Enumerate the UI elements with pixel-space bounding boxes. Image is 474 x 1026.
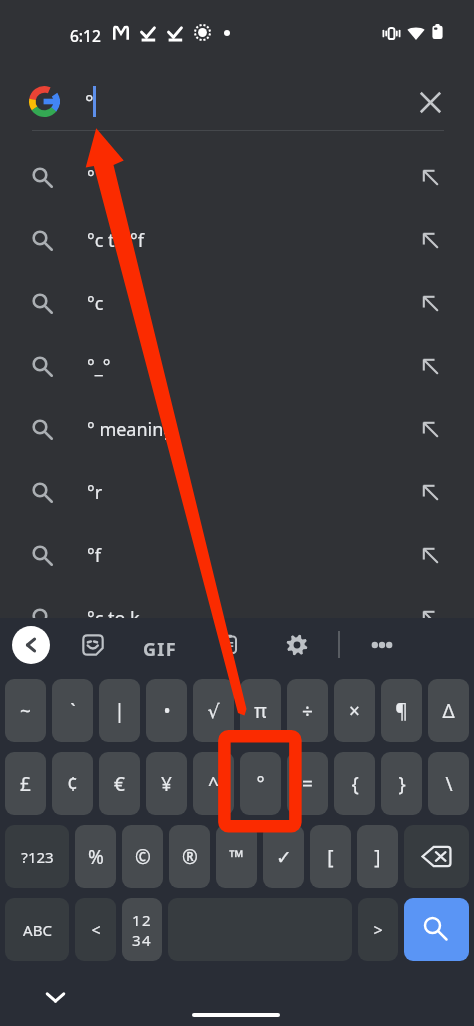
staticText: ° meaning [87,417,175,442]
staticText: ABC [23,920,52,940]
button[interactable]: More options [366,629,398,661]
button[interactable]: √ [193,679,234,742]
button[interactable]: GIF [140,629,180,669]
staticText: | [114,698,125,724]
staticText: ?123 [21,847,54,867]
button[interactable]: ] [357,825,398,888]
staticText: € [114,771,125,797]
staticText: °c [87,291,104,316]
staticText: ® [182,844,198,870]
staticText: ~ [20,698,31,724]
staticText: % [88,844,104,870]
button[interactable]: Search [404,898,469,961]
staticText: π [254,698,267,724]
staticText: × [349,698,360,724]
button[interactable]: % [75,825,116,888]
staticText: ] [374,844,381,870]
button[interactable]: °c to k [0,587,474,650]
button[interactable]: Stickers [77,629,109,661]
button[interactable]: °r [0,461,474,524]
button[interactable]: Clipboard [214,629,245,660]
button[interactable]: £ [5,752,46,815]
button[interactable]: ABC [5,898,69,961]
staticText: 12 [132,910,153,930]
staticText: °c to °f [87,228,144,253]
button[interactable]: \ [428,752,469,815]
button[interactable]: ¢ [52,752,93,815]
button[interactable]: € [99,752,140,815]
button[interactable]: °f [0,524,474,587]
button[interactable]: ÷ [287,679,328,742]
staticText: [ [327,844,334,870]
button[interactable]: • [146,679,187,742]
button[interactable]: ¥ [146,752,187,815]
staticText: \ [445,771,453,797]
button[interactable]: } [381,752,422,815]
button[interactable]: < [75,898,116,961]
button[interactable]: ¶ [381,679,422,742]
staticText: } [398,771,406,797]
button[interactable]: °c [0,272,474,335]
button[interactable]: ?123 [5,825,69,888]
staticText: < [91,919,101,941]
staticText: Δ [442,698,455,724]
button[interactable]: ` [52,679,93,742]
button[interactable]: = [287,752,328,815]
staticText: > [373,919,383,941]
button[interactable]: Back [12,626,50,664]
staticText: © [135,844,151,870]
button[interactable]: °c to °f [0,209,474,272]
staticText: ™ [229,844,244,870]
staticText: ✓ [276,846,292,868]
button[interactable]: × [334,679,375,742]
staticText: ° [256,771,265,797]
button[interactable]: > [358,898,398,961]
staticText: °c to k [87,606,140,631]
staticText: °_° [87,354,111,379]
staticText: = [302,771,313,797]
staticText: • [163,698,171,724]
staticText: £ [20,771,31,797]
button[interactable]: °_° [0,335,474,398]
button[interactable]: ✓ [263,825,304,888]
staticText: ° [85,89,94,116]
staticText: °f [87,543,101,568]
button[interactable]: Δ [428,679,469,742]
button[interactable]: ™ [216,825,257,888]
staticText: ` [70,698,76,724]
button[interactable]: Numbers [122,898,162,961]
button[interactable]: © [122,825,163,888]
button[interactable]: { [334,752,375,815]
staticText: ÷ [302,698,313,724]
button[interactable]: ~ [5,679,46,742]
staticText: ¥ [161,771,172,797]
staticText: 34 [132,930,153,950]
button[interactable]: ° [0,146,474,209]
button[interactable]: π [240,679,281,742]
button[interactable]: ® [169,825,210,888]
staticText: ° [87,165,95,190]
button[interactable]: Hide keyboard [44,986,67,1009]
button[interactable]: [ [310,825,351,888]
button[interactable]: ° [240,752,281,815]
staticText: ^ [208,771,219,797]
staticText: √ [207,700,220,722]
staticText: ¶ [395,698,408,724]
button[interactable]: ^ [193,752,234,815]
staticText: 6:12 [70,25,101,46]
button[interactable]: Delete [404,825,469,888]
staticText: ¢ [67,771,78,797]
staticText: { [351,771,359,797]
button[interactable]: ° meaning [0,398,474,461]
button[interactable]: Clear search [418,90,443,115]
button[interactable]: Settings [281,629,313,661]
staticText: GIF [143,637,177,662]
button[interactable]: | [99,679,140,742]
staticText: °r [87,480,103,505]
